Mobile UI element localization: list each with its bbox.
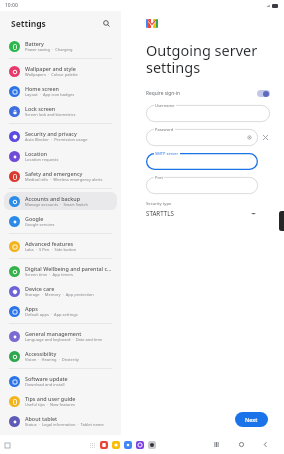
staticText: Download and install — [25, 382, 65, 387]
button[interactable]: Clear password — [261, 133, 270, 142]
staticText: Next — [245, 416, 258, 423]
button[interactable] — [146, 105, 270, 122]
staticText: STARTTLS — [146, 209, 174, 217]
button[interactable]: General management — [4, 327, 117, 345]
staticText: Auto Blocker · Permission usage — [25, 137, 88, 142]
staticText: Home screen — [25, 85, 59, 92]
button[interactable]: Browser — [136, 441, 144, 449]
button[interactable]: Recent apps — [211, 439, 222, 450]
staticText: SMTP server — [155, 151, 179, 156]
staticText: Tips and user guide — [25, 395, 76, 402]
staticText: Wallpaper and style — [25, 65, 76, 72]
staticText: Manage accounts · Smart Switch — [25, 202, 88, 207]
staticText: Require sign-in — [146, 90, 180, 97]
button[interactable]: Location — [4, 147, 117, 165]
button[interactable]: Safety and emergency — [4, 167, 117, 185]
staticText: Screen lock and biometrics — [25, 112, 76, 117]
staticText: About tablet — [25, 415, 58, 422]
staticText: Safety and emergency — [25, 170, 83, 177]
button[interactable] — [146, 177, 258, 194]
button[interactable]: Tips and user guide — [4, 392, 117, 410]
button[interactable]: Accessibility — [4, 347, 117, 365]
button[interactable]: All apps — [89, 442, 96, 449]
button[interactable]: Wallpaper and style — [4, 62, 117, 80]
staticText: Advanced features — [25, 240, 74, 247]
staticText: Apps — [25, 305, 38, 312]
staticText: Security and privacy — [25, 130, 77, 137]
button[interactable]: Next — [235, 412, 268, 427]
staticText: Software update — [25, 375, 68, 382]
staticText: Password — [155, 127, 174, 132]
staticText: Accessibility — [25, 350, 57, 357]
button[interactable] — [146, 129, 258, 146]
staticText: Digital Wellbeing and parental controls — [25, 265, 112, 272]
staticText: Accounts and backup — [25, 195, 80, 202]
button[interactable]: Back — [260, 439, 271, 450]
button[interactable]: Advanced features — [4, 237, 117, 255]
button[interactable]: Home screen — [4, 82, 117, 100]
staticText: Lock screen — [25, 105, 56, 112]
staticText: Wallpapers · Colour palette — [25, 72, 78, 77]
staticText: Username — [155, 103, 175, 108]
staticText: Security type — [146, 201, 172, 207]
button[interactable]: Edge panel handle — [279, 211, 284, 231]
button[interactable]: Gmail — [100, 441, 108, 449]
button[interactable]: About tablet — [4, 412, 117, 430]
staticText: Medical info · Wireless emergency alerts — [25, 177, 103, 182]
staticText: Location requests — [25, 157, 59, 162]
staticText: 10:00 — [5, 2, 18, 9]
staticText: Port — [155, 175, 163, 180]
staticText: Google services — [25, 222, 55, 227]
button[interactable]: Apps — [4, 302, 117, 320]
button[interactable]: Home — [236, 439, 247, 450]
staticText: Language and keyboard · Date and time — [25, 337, 103, 342]
button[interactable]: Files — [112, 441, 120, 449]
button[interactable]: Settings — [148, 441, 156, 449]
button[interactable]: Messages — [124, 441, 132, 449]
button[interactable]: Battery — [4, 37, 117, 55]
staticText: Useful tips · New features — [25, 402, 76, 407]
staticText: Outgoing server settings — [146, 40, 258, 77]
button[interactable]: Software update — [4, 372, 117, 390]
button[interactable]: Screenshot — [3, 441, 11, 449]
staticText: Default apps · App settings — [25, 312, 78, 317]
staticText: Storage · Memory · App protection — [25, 292, 94, 297]
button[interactable]: Accounts and backup — [4, 192, 117, 210]
staticText: Google — [25, 215, 44, 222]
staticText: Vision · Hearing · Dexterity — [25, 357, 79, 362]
staticText: Layout · App icon badges — [25, 92, 75, 97]
staticText: Settings — [11, 18, 46, 30]
button[interactable]: Google — [4, 212, 117, 230]
button[interactable]: Device care — [4, 282, 117, 300]
staticText: Status · Legal information · Tablet name — [25, 422, 104, 427]
button[interactable] — [146, 153, 258, 170]
staticText: Screen time · App timers — [25, 272, 73, 277]
button[interactable]: STARTTLS — [146, 209, 256, 217]
staticText: Device care — [25, 285, 55, 292]
staticText: Location — [25, 150, 48, 157]
button[interactable]: Lock screen — [4, 102, 117, 120]
button[interactable]: Show password — [246, 134, 253, 141]
button[interactable]: Digital Wellbeing and parental controls — [4, 262, 117, 280]
button[interactable]: Search settings — [100, 17, 113, 30]
staticText: Labs · S Pen · Side button — [25, 247, 77, 252]
staticText: General management — [25, 330, 82, 337]
button[interactable]: Security and privacy — [4, 127, 117, 145]
button[interactable]: Require sign-in — [146, 90, 270, 97]
staticText: Power saving · Charging — [25, 47, 73, 52]
staticText: Battery — [25, 40, 44, 47]
